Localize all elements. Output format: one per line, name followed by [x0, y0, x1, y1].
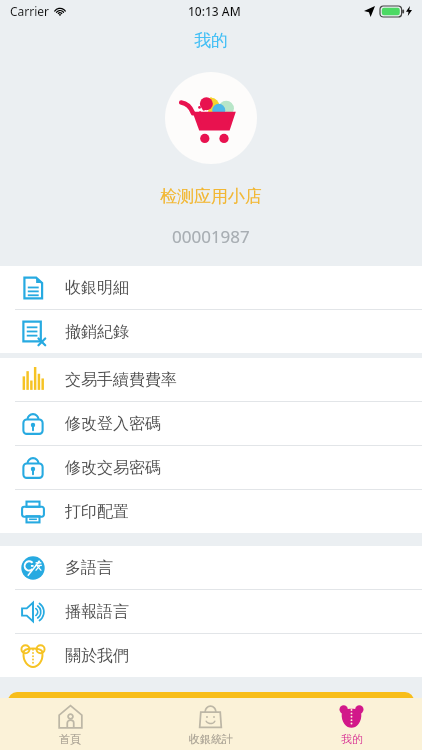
staticText: 多語言 — [65, 558, 113, 578]
staticText: 收銀明細 — [65, 278, 129, 298]
staticText: 我的 — [194, 30, 228, 51]
button[interactable]: 首頁 — [0, 698, 140, 750]
button[interactable]: Store avatar — [165, 72, 257, 164]
staticText: 打印配置 — [65, 502, 129, 522]
staticText: 播報語言 — [65, 602, 129, 622]
staticText: 修改登入密碼 — [65, 414, 161, 434]
button[interactable]: 收銀明細 — [0, 266, 422, 310]
button[interactable]: 修改登入密碼 — [0, 402, 422, 446]
button[interactable]: 打印配置 — [0, 490, 422, 533]
button[interactable]: 我的 — [281, 698, 422, 750]
staticText: 關於我們 — [65, 646, 129, 666]
button[interactable]: 收銀統計 — [140, 698, 281, 750]
button[interactable]: 播報語言 — [0, 590, 422, 634]
staticText: Carrier — [10, 3, 50, 19]
staticText: 我的 — [341, 732, 363, 746]
staticText: 首頁 — [59, 732, 81, 746]
staticText: 修改交易密碼 — [65, 458, 161, 478]
button[interactable]: 關於我們 — [0, 634, 422, 677]
staticText: 10:13 AM — [188, 3, 241, 19]
staticText: 检测应用小店 — [160, 186, 262, 207]
button[interactable]: 多語言 — [0, 546, 422, 590]
staticText: 撤銷紀錄 — [65, 322, 129, 342]
staticText: 00001987 — [172, 225, 250, 248]
staticText: 交易手續費費率 — [65, 370, 177, 390]
button[interactable]: 修改交易密碼 — [0, 446, 422, 490]
button[interactable]: 撤銷紀錄 — [0, 310, 422, 353]
staticText: 收銀統計 — [189, 732, 233, 746]
button[interactable]: 交易手續費費率 — [0, 358, 422, 402]
